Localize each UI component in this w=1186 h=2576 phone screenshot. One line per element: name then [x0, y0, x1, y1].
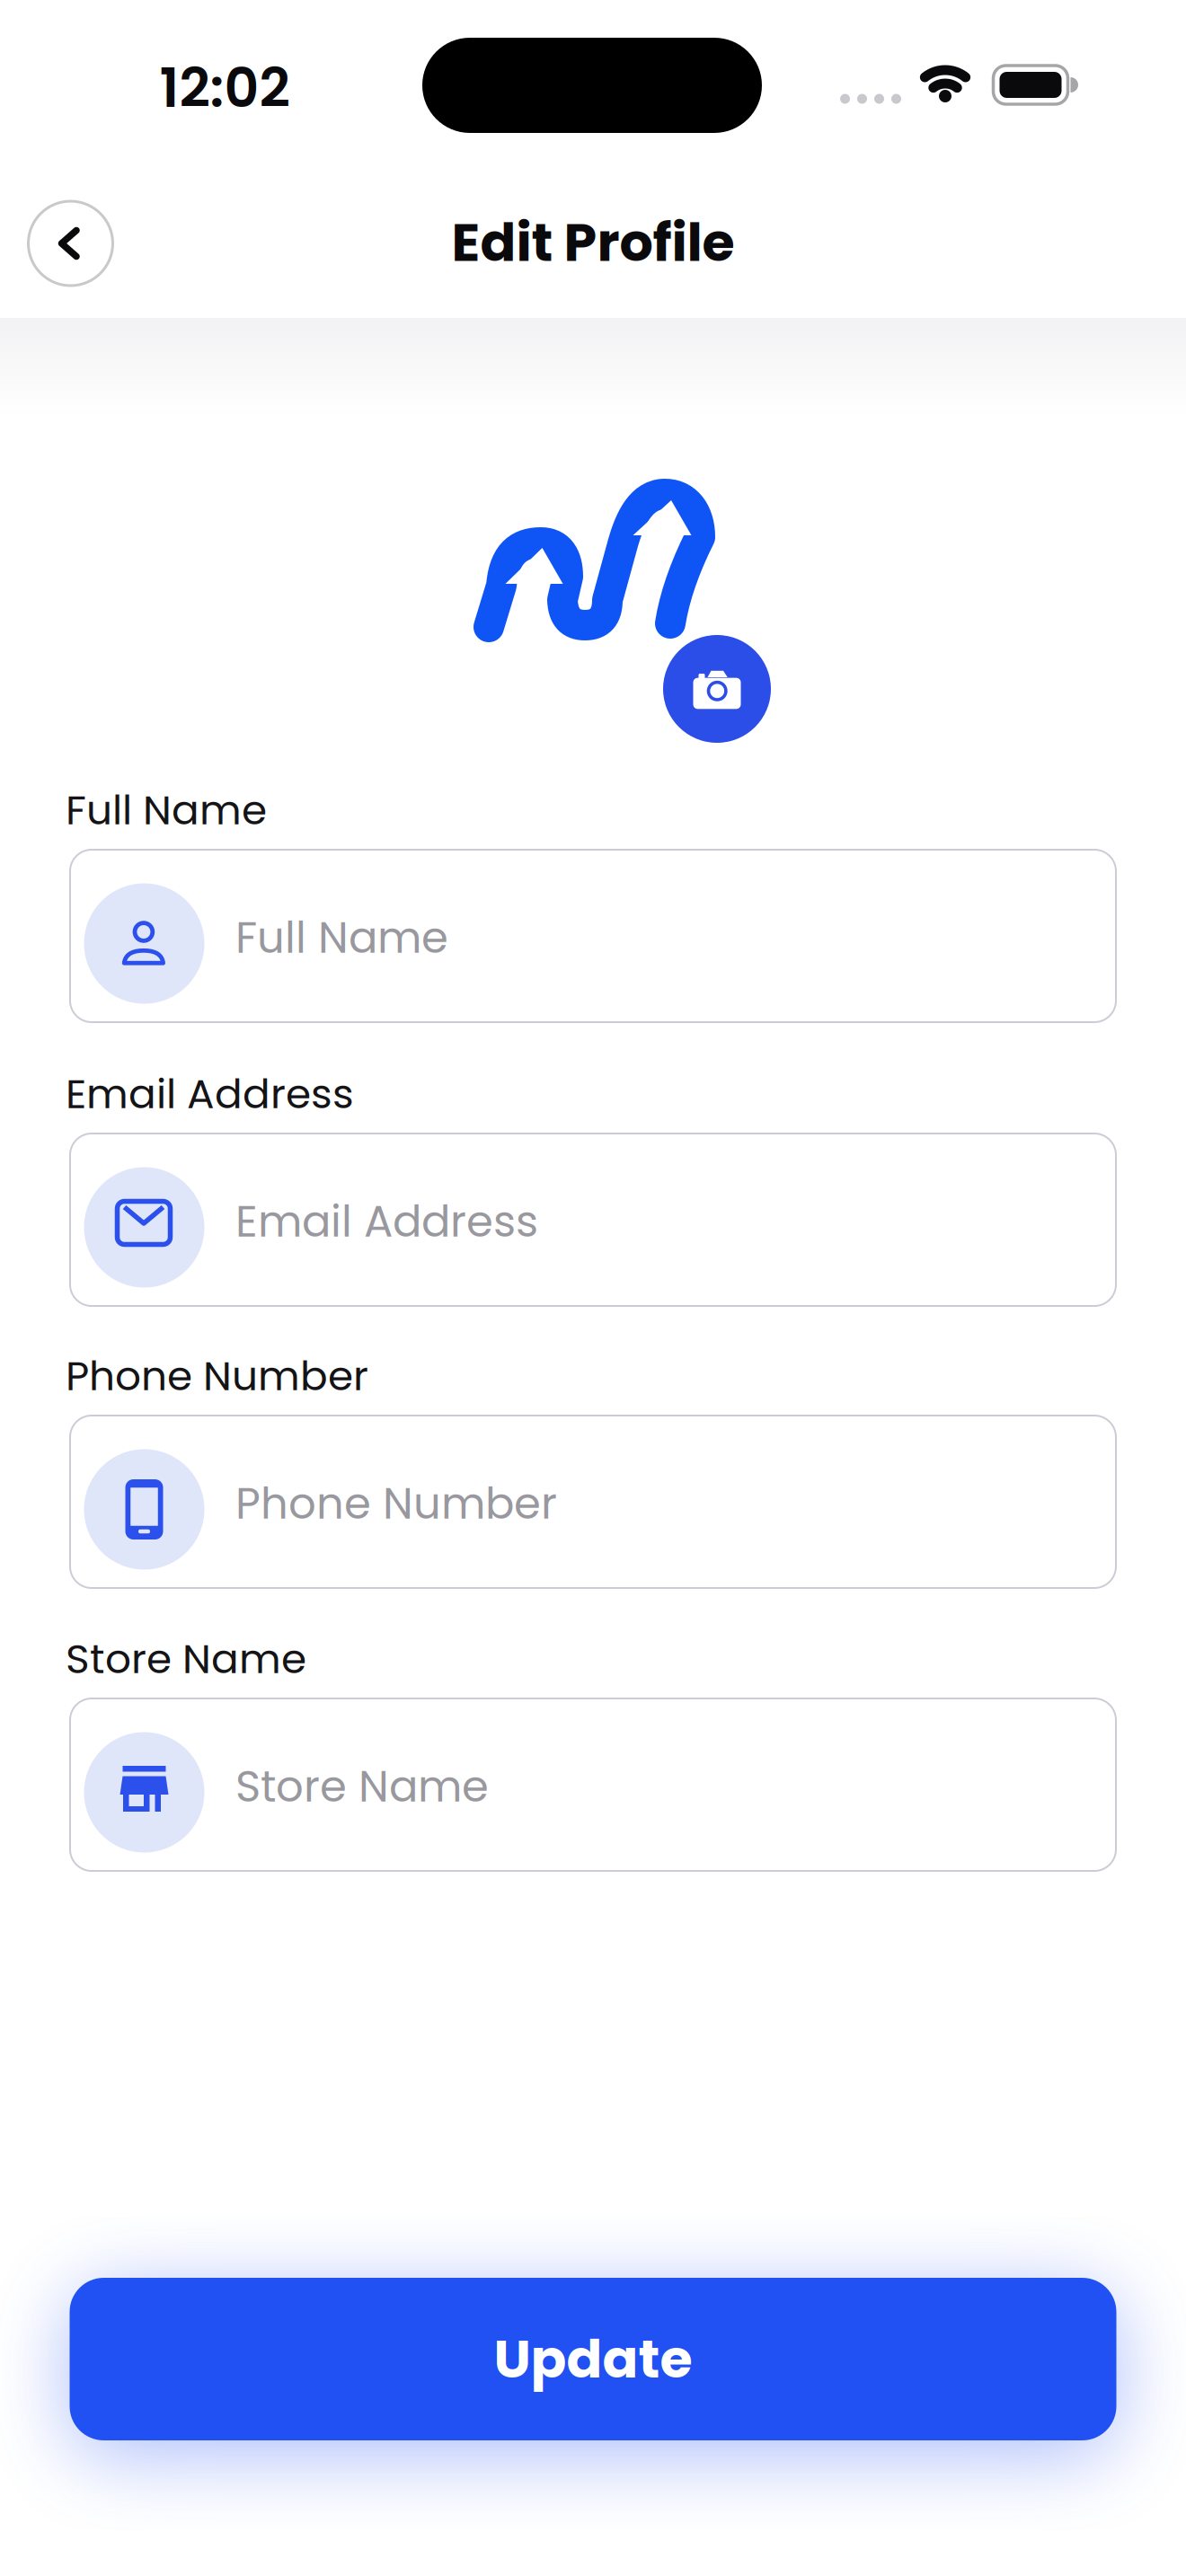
button[interactable]: Full Name [70, 850, 1116, 1022]
staticText: Phone Number [235, 1473, 557, 1534]
staticText: Store Name [235, 1756, 489, 1817]
button[interactable]: Change profile photo [663, 635, 771, 743]
staticText: Full Name [235, 908, 448, 968]
button[interactable]: Back [28, 201, 113, 286]
staticText: Email Address [235, 1191, 538, 1252]
staticText: Email Address [66, 1066, 354, 1123]
staticText: Phone Number [66, 1348, 368, 1405]
button[interactable]: Store Name [70, 1698, 1116, 1871]
button[interactable]: Update [70, 2278, 1116, 2440]
button[interactable]: Phone Number [70, 1416, 1116, 1588]
staticText: Full Name [66, 782, 267, 839]
staticText: Update [494, 2322, 692, 2396]
staticText: Edit Profile [451, 206, 735, 279]
button[interactable]: Email Address [70, 1134, 1116, 1306]
staticText: 12:02 [159, 50, 290, 126]
staticText: Store Name [66, 1630, 306, 1688]
